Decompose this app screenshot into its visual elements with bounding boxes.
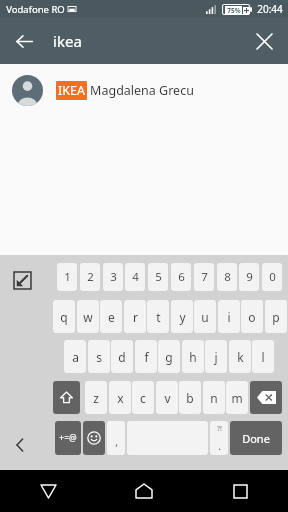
- staticText: c: [140, 390, 146, 406]
- staticText: .: [218, 439, 221, 453]
- button[interactable]: 7: [194, 263, 214, 291]
- button[interactable]: t: [147, 300, 169, 333]
- staticText: m: [231, 390, 243, 406]
- button[interactable]: v: [156, 381, 178, 414]
- button[interactable]: h: [182, 340, 204, 373]
- staticText: x: [117, 390, 124, 406]
- button[interactable]: ?!: [210, 421, 228, 455]
- staticText: z: [93, 390, 99, 406]
- button[interactable]: Recent apps: [192, 470, 288, 512]
- staticText: 9: [246, 269, 253, 285]
- staticText: ,: [115, 435, 118, 449]
- button[interactable]: l: [252, 340, 274, 373]
- staticText: q: [60, 309, 68, 325]
- button[interactable]: Move keyboard left: [8, 433, 32, 457]
- button[interactable]: n: [203, 381, 225, 414]
- button[interactable]: c: [132, 381, 154, 414]
- button[interactable]: x: [109, 381, 131, 414]
- button[interactable]: q: [53, 300, 75, 333]
- button[interactable]: j: [205, 340, 227, 373]
- button[interactable]: 5: [148, 263, 168, 291]
- staticText: s: [96, 349, 102, 365]
- button[interactable]: s: [88, 340, 110, 373]
- button[interactable]: r: [124, 300, 146, 333]
- staticText: ikea: [53, 31, 82, 51]
- staticText: v: [164, 390, 171, 406]
- button[interactable]: u: [194, 300, 216, 333]
- button[interactable]: m: [226, 381, 248, 414]
- staticText: i: [227, 309, 231, 325]
- button[interactable]: o: [241, 300, 263, 333]
- button[interactable]: g: [158, 340, 180, 373]
- button[interactable]: Shift: [53, 381, 80, 414]
- button[interactable]: 2: [80, 263, 100, 291]
- staticText: u: [201, 309, 209, 325]
- button[interactable]: p: [265, 300, 287, 333]
- staticText: 0: [269, 269, 276, 285]
- button[interactable]: w: [77, 300, 99, 333]
- button[interactable]: Resize keyboard: [10, 268, 34, 292]
- button[interactable]: 3: [103, 263, 123, 291]
- button[interactable]: z: [85, 381, 107, 414]
- button[interactable]: 9: [239, 263, 259, 291]
- staticText: b: [186, 390, 194, 406]
- button[interactable]: Backspace: [250, 381, 282, 414]
- staticText: j: [214, 349, 218, 365]
- staticText: h: [189, 349, 197, 365]
- staticText: a: [72, 349, 79, 365]
- button[interactable]: Back: [0, 470, 96, 512]
- button[interactable]: 1: [57, 263, 77, 291]
- button[interactable]: Back: [6, 23, 42, 59]
- button[interactable]: 8: [217, 263, 237, 291]
- staticText: IKEA: [58, 82, 85, 99]
- button[interactable]: 4: [125, 263, 145, 291]
- button[interactable]: Home: [96, 470, 192, 512]
- button[interactable]: k: [229, 340, 251, 373]
- button[interactable]: 0: [262, 263, 282, 291]
- staticText: g: [165, 349, 173, 365]
- staticText: 4: [132, 269, 139, 285]
- staticText: 6: [178, 269, 185, 285]
- staticText: 2: [87, 269, 94, 285]
- staticText: d: [118, 349, 126, 365]
- staticText: w: [83, 309, 93, 325]
- staticText: 7: [201, 269, 208, 285]
- button[interactable]: e: [100, 300, 122, 333]
- staticText: +=@: [59, 432, 77, 444]
- staticText: Done: [242, 431, 270, 446]
- staticText: r: [133, 309, 138, 325]
- button[interactable]: 6: [171, 263, 191, 291]
- button[interactable]: d: [111, 340, 133, 373]
- staticText: 5: [155, 269, 162, 285]
- staticText: e: [108, 309, 115, 325]
- staticText: k: [237, 349, 244, 365]
- button[interactable]: Done: [230, 421, 282, 455]
- staticText: 8: [224, 269, 231, 285]
- staticText: 75%: [227, 6, 241, 14]
- button[interactable]: ,: [107, 421, 125, 455]
- staticText: o: [248, 309, 256, 325]
- staticText: f: [144, 349, 149, 365]
- button[interactable]: b: [179, 381, 201, 414]
- staticText: 1: [64, 269, 71, 285]
- staticText: ?!: [217, 424, 222, 434]
- staticText: t: [156, 309, 161, 325]
- staticText: y: [179, 309, 186, 325]
- button[interactable]: Clear search: [246, 23, 282, 59]
- button[interactable]: Emoji: [83, 421, 105, 455]
- staticText: 3: [110, 269, 117, 285]
- button[interactable]: i: [218, 300, 240, 333]
- staticText: p: [272, 309, 280, 325]
- staticText: Vodafone RO: [6, 3, 65, 16]
- button[interactable]: +=@: [55, 421, 81, 455]
- button[interactable]: IKEA: [0, 64, 288, 116]
- staticText: n: [210, 390, 218, 406]
- staticText: 20:44: [257, 2, 283, 16]
- button[interactable]: a: [64, 340, 86, 373]
- button[interactable]: f: [135, 340, 157, 373]
- button[interactable]: y: [171, 300, 193, 333]
- staticText: Magdalena Grecu: [90, 82, 194, 99]
- staticText: l: [261, 349, 265, 365]
